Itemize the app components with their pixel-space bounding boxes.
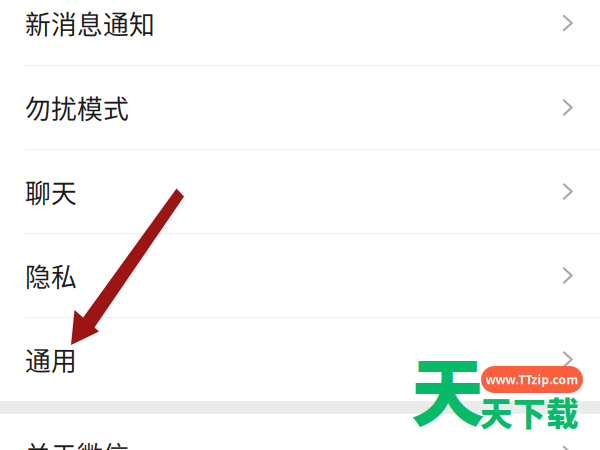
staticText: www.TTzip.com — [485, 371, 578, 387]
staticText: 天下载 — [480, 388, 579, 435]
button[interactable]: 通用 — [0, 318, 600, 401]
button[interactable]: 聊天 — [0, 150, 600, 233]
button[interactable]: 勿扰模式 — [0, 66, 600, 149]
staticText: 关于微信 — [25, 435, 129, 450]
staticText: 勿扰模式 — [25, 89, 129, 126]
button[interactable]: 新消息通知 — [0, 0, 600, 65]
staticText: 聊天 — [25, 173, 77, 210]
staticText: 通用 — [25, 341, 77, 378]
staticText: 新消息通知 — [25, 4, 155, 42]
button[interactable]: 关于微信 — [0, 414, 600, 450]
staticText: 天 — [411, 335, 484, 441]
staticText: 隐私 — [25, 257, 77, 294]
button[interactable]: 隐私 — [0, 234, 600, 317]
